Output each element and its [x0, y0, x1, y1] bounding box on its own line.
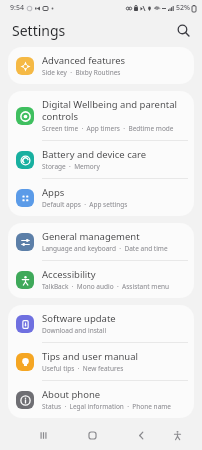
button[interactable]: Back: [117, 420, 166, 450]
button[interactable]: Accessibility: [8, 261, 194, 298]
button[interactable]: Software update: [8, 305, 194, 342]
staticText: Settings: [12, 21, 66, 40]
button[interactable]: Home: [68, 420, 117, 450]
staticText: Side key · Bixby Routines: [42, 68, 121, 77]
button[interactable]: Accessibility: [166, 420, 188, 450]
button[interactable]: Digital Wellbeing and parental controls: [8, 91, 194, 140]
button[interactable]: Apps: [8, 179, 194, 216]
button[interactable]: General management: [8, 223, 194, 260]
staticText: 52%: [176, 3, 190, 13]
button[interactable]: Tips and user manual: [8, 343, 194, 380]
staticText: Digital Wellbeing and parental controls: [42, 98, 184, 123]
staticText: Useful tips · New features: [42, 364, 124, 373]
staticText: Screen time · App timers · Bedtime mode: [42, 124, 174, 133]
button[interactable]: Advanced features: [8, 47, 194, 84]
staticText: Storage · Memory: [42, 162, 100, 171]
staticText: Language and keyboard · Date and time: [42, 244, 168, 253]
staticText: Software update: [42, 312, 116, 325]
staticText: Status · Legal information · Phone name: [42, 402, 172, 411]
staticText: 9:54: [10, 3, 24, 13]
staticText: General management: [42, 230, 140, 243]
button[interactable]: Battery and device care: [8, 141, 194, 178]
staticText: Default apps · App settings: [42, 200, 128, 209]
staticText: TalkBack · Mono audio · Assistant menu: [42, 282, 170, 291]
button[interactable]: About phone: [8, 381, 194, 418]
staticText: Battery and device care: [42, 148, 147, 161]
staticText: Tips and user manual: [42, 350, 139, 363]
staticText: Accessibility: [42, 268, 96, 281]
button[interactable]: Recents: [18, 420, 68, 450]
button[interactable]: Search: [172, 19, 194, 41]
staticText: Advanced features: [42, 54, 126, 67]
staticText: About phone: [42, 388, 101, 401]
staticText: Apps: [42, 186, 65, 199]
staticText: Download and install: [42, 326, 107, 335]
